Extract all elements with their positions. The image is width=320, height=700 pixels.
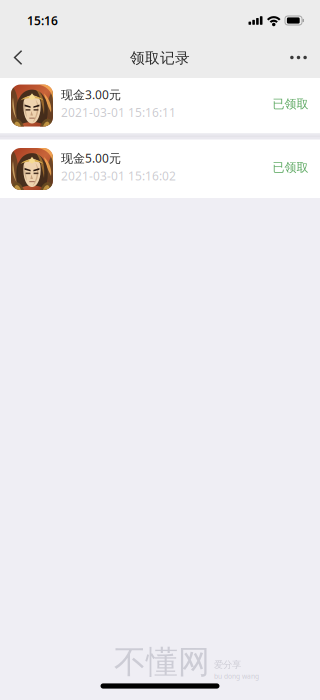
staticText: 不懂网 [114,642,210,682]
staticText: 15:16 [27,12,58,28]
staticText: 已领取 [272,160,308,175]
button[interactable]: Back [0,42,39,76]
button[interactable]: 现金5.00元 [0,140,320,198]
button[interactable]: More [274,42,320,76]
staticText: 已领取 [272,97,308,111]
staticText: 现金5.00元 [61,150,121,166]
staticText: 现金3.00元 [61,87,121,102]
staticText: 2021-03-01 15:16:11 [61,104,176,120]
staticText: 领取记录 [130,49,190,67]
button[interactable]: 现金3.00元 [0,78,320,133]
staticText: bu dong wang [214,672,259,681]
staticText: 2021-03-01 15:16:02 [61,168,176,184]
staticText: 爱分享 [214,659,241,670]
